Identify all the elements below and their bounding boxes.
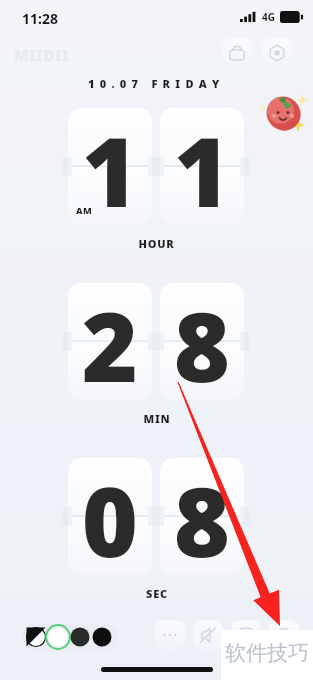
staticText: 8	[160, 458, 244, 571]
button[interactable]: Settings	[262, 38, 292, 68]
button[interactable]: Info	[269, 620, 299, 650]
staticText: AM	[76, 204, 93, 216]
staticText: MIIDII	[14, 45, 69, 65]
staticText: SEC	[146, 586, 168, 601]
staticText: 11:28	[22, 9, 58, 28]
staticText: 软件技巧	[225, 640, 309, 666]
button[interactable]: Font	[231, 620, 261, 650]
staticText: 0	[68, 458, 152, 571]
button[interactable]: 0	[68, 458, 152, 575]
button[interactable]: Themes	[222, 38, 252, 68]
staticText: MIN	[143, 411, 171, 426]
staticText: HOUR	[138, 236, 175, 251]
button[interactable]: More	[155, 620, 185, 650]
staticText: 1	[68, 108, 152, 221]
staticText: 1	[160, 108, 244, 221]
button[interactable]: Theme colors	[22, 623, 118, 651]
button[interactable]: Mute	[193, 620, 223, 650]
staticText: 8	[160, 283, 244, 396]
button[interactable]: 1	[68, 108, 152, 225]
button[interactable]: 8	[160, 458, 244, 575]
button[interactable]: 8	[160, 283, 244, 400]
staticText: 1 0 . 0 7 F R I D A Y	[88, 76, 221, 91]
staticText: 4G	[262, 10, 275, 24]
staticText: 2	[68, 283, 152, 396]
button[interactable]: 1	[160, 108, 244, 225]
button[interactable]: 2	[68, 283, 152, 400]
